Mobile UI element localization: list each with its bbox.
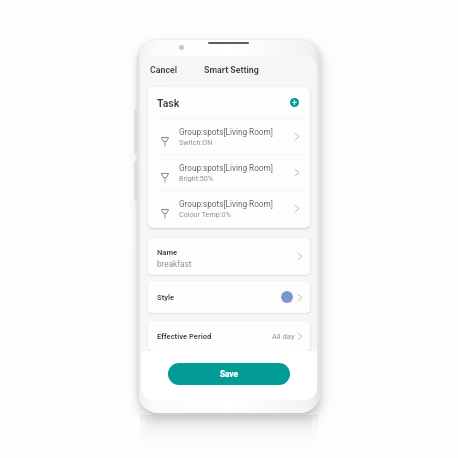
- staticText: Cancel: [150, 65, 178, 75]
- staticText: Group:spots[Living Room]: [179, 163, 273, 173]
- button[interactable]: Style: [148, 281, 310, 313]
- button[interactable]: Group:spots[Living Room]: [148, 119, 310, 154]
- staticText: Switch:ON: [179, 138, 213, 146]
- button[interactable]: Save: [168, 363, 290, 385]
- staticText: Effective Period: [157, 332, 212, 341]
- button[interactable]: Cancel: [141, 59, 184, 81]
- staticText: Bright:50%: [179, 174, 214, 182]
- button[interactable]: Group:spots[Living Room]: [148, 155, 310, 190]
- staticText: All day: [272, 332, 295, 341]
- staticText: Smart Setting: [204, 65, 259, 75]
- button[interactable]: Add task: [290, 98, 299, 107]
- button[interactable]: Group:spots[Living Room]: [148, 191, 310, 226]
- button[interactable]: Effective Period: [148, 321, 310, 351]
- staticText: Group:spots[Living Room]: [179, 199, 273, 209]
- staticText: Name: [157, 248, 178, 257]
- staticText: Colour Temp:0%: [179, 210, 231, 218]
- staticText: Group:spots[Living Room]: [179, 127, 273, 137]
- staticText: breakfast: [157, 259, 192, 269]
- staticText: Style: [157, 293, 175, 302]
- button[interactable]: Name: [148, 238, 310, 275]
- staticText: Task: [157, 97, 180, 109]
- staticText: Save: [220, 369, 238, 379]
